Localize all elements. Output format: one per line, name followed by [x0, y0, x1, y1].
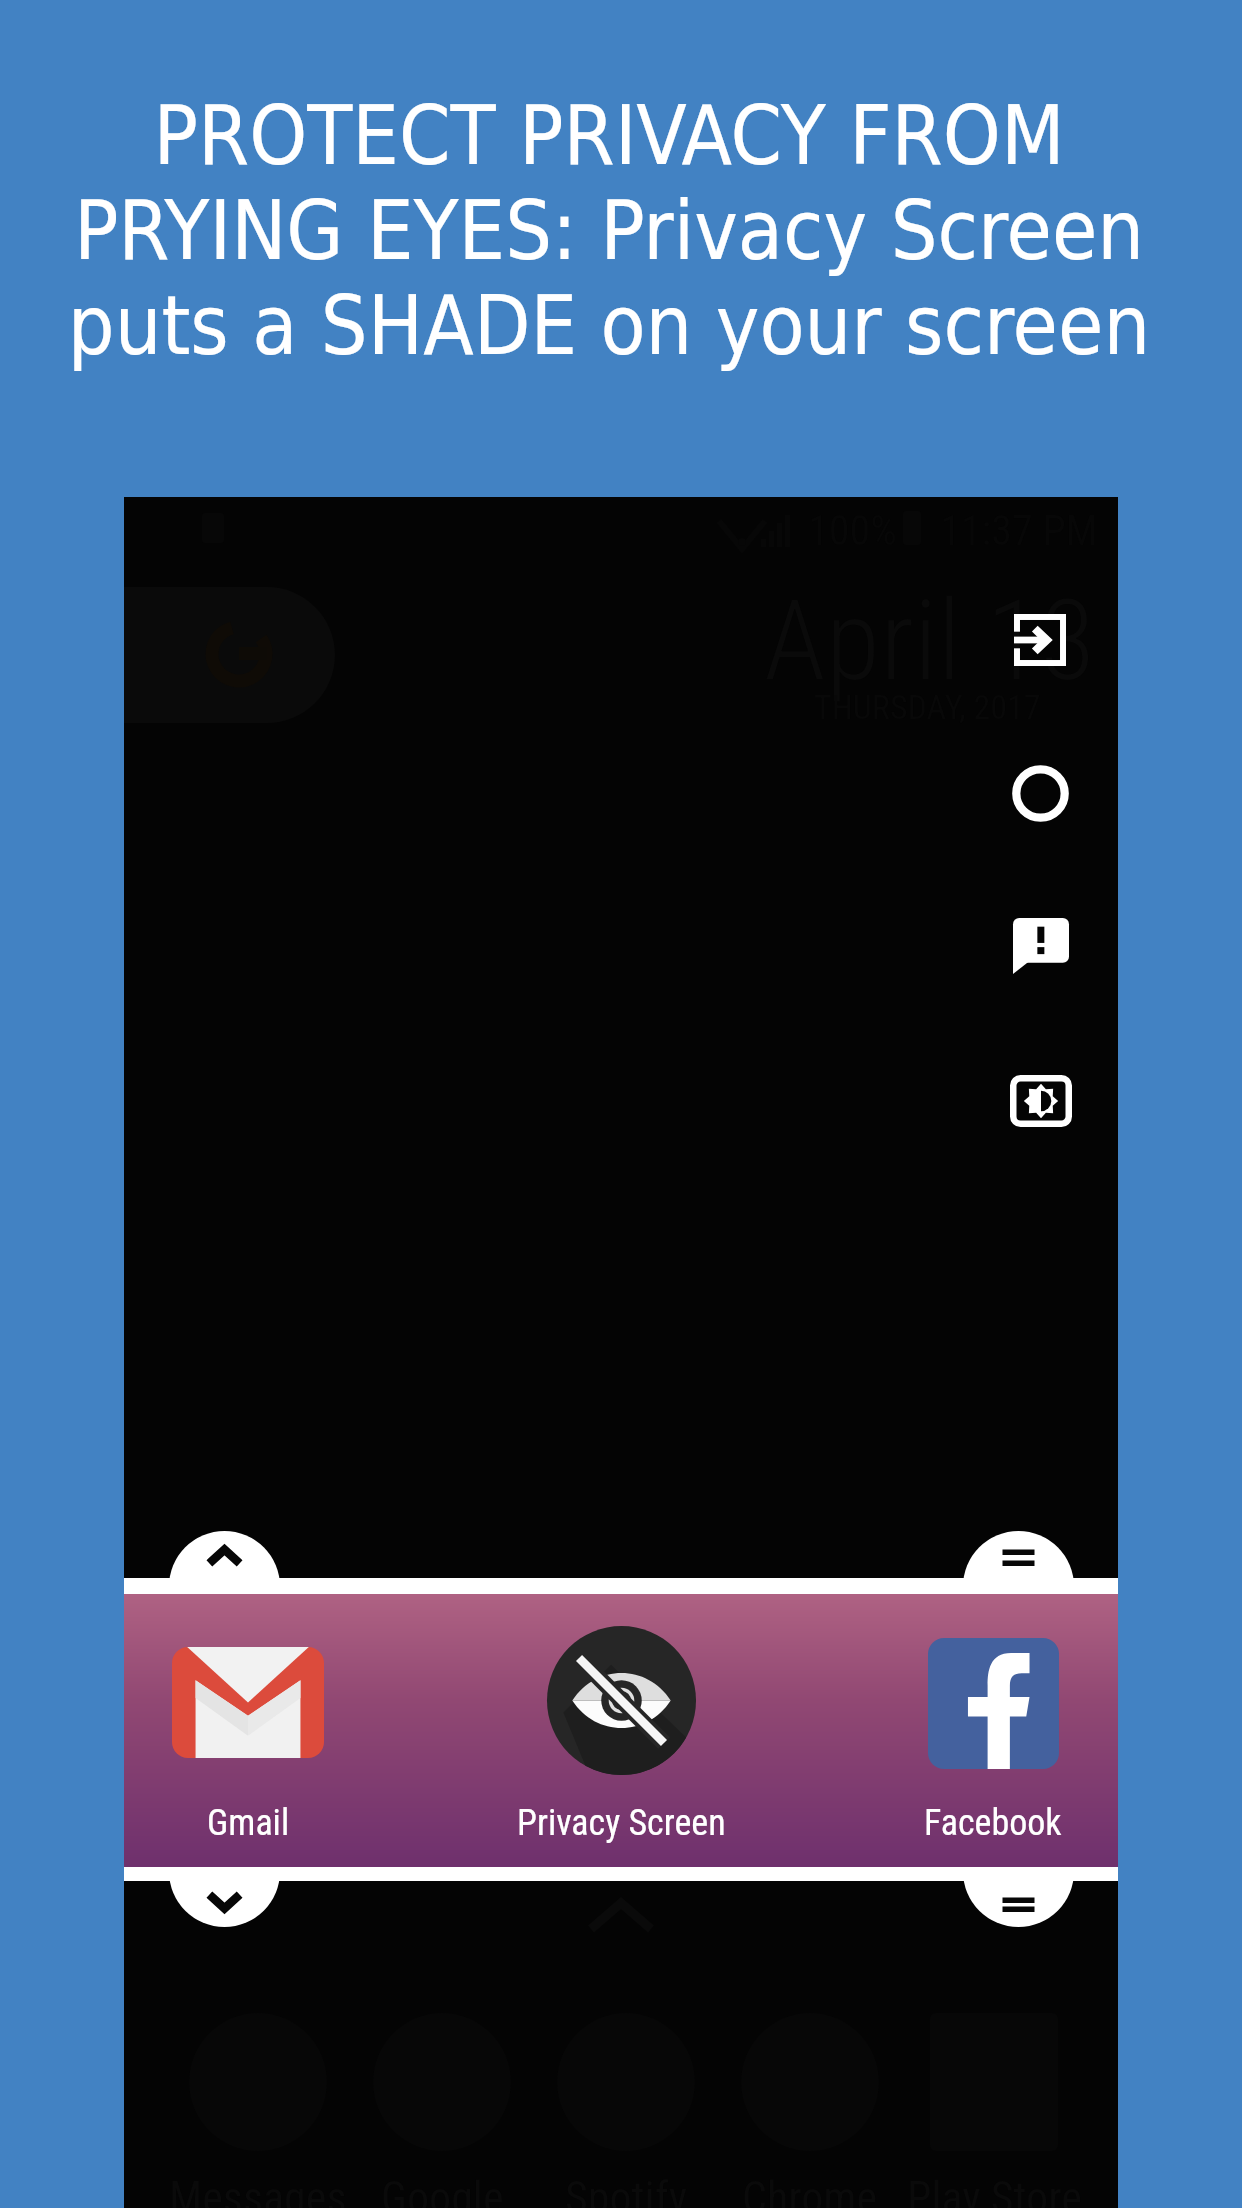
staticText: Privacy Screen [517, 1802, 726, 1844]
button[interactable]: Resize shade [169, 1816, 280, 1927]
staticText: PROTECT PRIVACY FROM [0, 88, 1230, 183]
button[interactable]: Facebook [843, 1594, 1118, 1867]
button[interactable]: Privacy Screen [471, 1594, 771, 1867]
staticText: Facebook [924, 1802, 1062, 1844]
button[interactable]: Gmail [124, 1594, 398, 1867]
button[interactable]: Brightness [1010, 1075, 1072, 1127]
staticText: Gmail [207, 1802, 290, 1844]
button[interactable]: Notification [1013, 918, 1069, 974]
button[interactable]: Resize shade [169, 1531, 280, 1642]
button[interactable]: Shade opacity [1013, 766, 1068, 821]
button[interactable]: Resize shade [963, 1816, 1074, 1927]
staticText: puts a SHADE on your screen [0, 278, 1230, 373]
staticText: April 13 [764, 575, 1096, 706]
button[interactable]: Exit [1014, 614, 1066, 666]
staticText: PRYING EYES: Privacy Screen [0, 183, 1230, 278]
button[interactable]: Move shade [963, 1531, 1074, 1642]
